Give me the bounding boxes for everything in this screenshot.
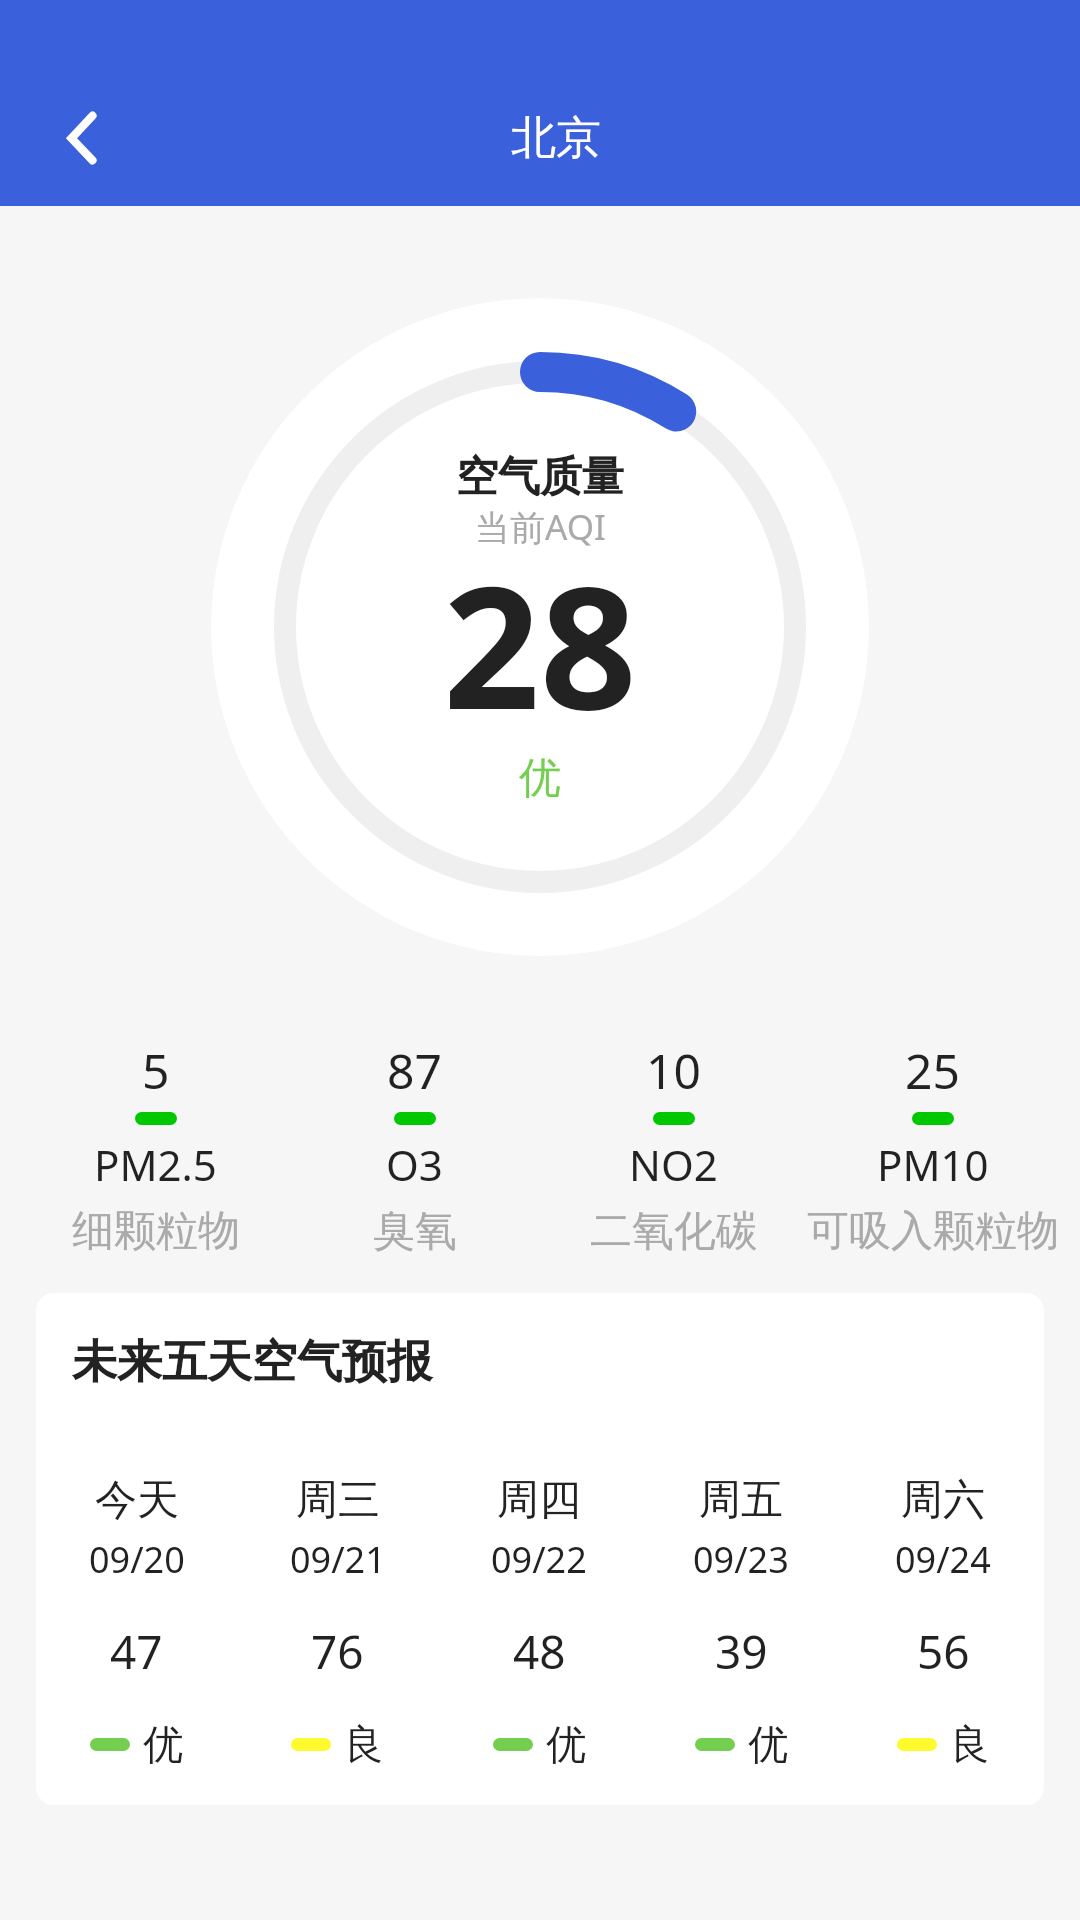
staticText: 未来五天空气预报 [72,1334,432,1391]
staticText: 56 [917,1620,970,1683]
button[interactable]: 25 [803,1038,1062,1258]
button[interactable]: 10 [544,1038,803,1258]
button[interactable]: 87 [285,1038,544,1258]
staticText: 周五 [699,1474,783,1527]
staticText: NO2 [629,1136,718,1193]
button[interactable]: 今天 [36,1474,237,1769]
staticText: 可吸入颗粒物 [807,1205,1059,1258]
staticText: 87 [387,1038,442,1103]
staticText: 09/23 [693,1535,789,1584]
staticText: 北京 [511,110,601,167]
staticText: 优 [748,1719,788,1769]
button[interactable]: 当前空气质量 AQI 28 优 [211,298,869,956]
staticText: 39 [715,1620,768,1683]
staticText: 10 [646,1038,701,1103]
staticText: 空气质量 [456,451,624,504]
staticText: 良 [344,1719,384,1769]
staticText: 周四 [497,1474,581,1527]
button[interactable]: Back [27,83,137,193]
button[interactable]: 5 [26,1038,285,1258]
staticText: 细颗粒物 [72,1205,240,1258]
staticText: 优 [143,1719,183,1769]
button[interactable]: 周三 [237,1474,438,1769]
staticText: 76 [311,1620,364,1683]
staticText: O3 [386,1136,443,1193]
staticText: 今天 [95,1474,179,1527]
staticText: PM2.5 [94,1136,217,1193]
staticText: 09/24 [895,1535,991,1584]
staticText: 良 [950,1719,990,1769]
button[interactable]: 周六 [842,1474,1044,1769]
staticText: 优 [546,1719,586,1769]
staticText: 09/21 [290,1535,386,1584]
staticText: 5 [142,1038,170,1103]
staticText: 09/20 [89,1535,185,1584]
staticText: 周三 [296,1474,380,1527]
staticText: 当前AQI [475,503,606,551]
staticText: 二氧化碳 [590,1205,758,1258]
staticText: 臭氧 [373,1205,457,1258]
button[interactable]: 周四 [438,1474,640,1769]
staticText: 09/22 [491,1535,587,1584]
staticText: 周六 [901,1474,985,1527]
staticText: 25 [905,1038,960,1103]
staticText: 48 [513,1620,566,1683]
staticText: PM10 [877,1136,989,1193]
staticText: 28 [443,528,637,758]
staticText: 优 [519,752,561,805]
staticText: 47 [110,1620,163,1683]
button[interactable]: 周五 [640,1474,842,1769]
